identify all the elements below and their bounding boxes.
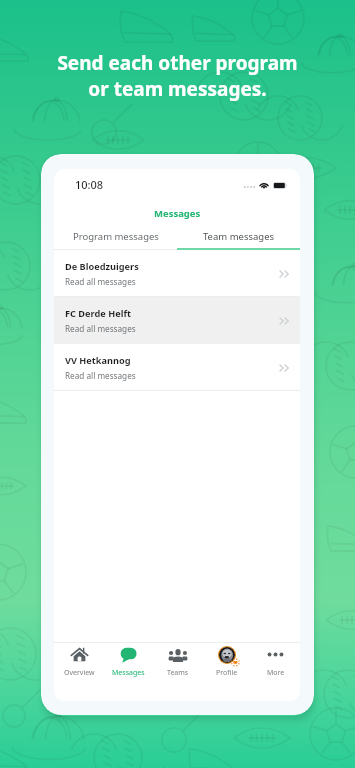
staticText: Teams — [167, 668, 189, 678]
staticText: Team messages — [203, 230, 275, 243]
staticText: Read all messages — [65, 370, 136, 381]
button[interactable]: More — [251, 643, 300, 701]
staticText: More — [267, 668, 285, 678]
staticText: De Bloedzuigers — [65, 260, 139, 273]
staticText: VV Hetkannog — [65, 354, 131, 367]
other: More — [267, 646, 284, 663]
button[interactable]: Team messages — [177, 226, 300, 247]
staticText: Program messages — [73, 230, 159, 243]
staticText: Messages — [154, 207, 201, 220]
button[interactable]: Overview — [54, 643, 104, 701]
other: Teams — [169, 648, 187, 662]
staticText: Read all messages — [65, 276, 136, 287]
staticText: Read all messages — [65, 323, 136, 334]
other: Overview — [71, 647, 88, 662]
staticText: Send each other program or team messages… — [0, 50, 355, 101]
other: Profile — [218, 646, 236, 664]
button[interactable]: Teams — [153, 643, 202, 701]
button[interactable]: Program messages — [54, 226, 177, 247]
other: Messages — [120, 647, 137, 663]
button[interactable]: VV Hetkannog — [54, 344, 300, 391]
staticText: 10:08 — [75, 177, 104, 192]
button[interactable]: FC Derde Helft — [54, 297, 300, 344]
button[interactable]: Profile — [202, 643, 251, 701]
staticText: FC Derde Helft — [65, 307, 131, 320]
staticText: Overview — [64, 668, 95, 678]
button[interactable]: Messages — [104, 643, 153, 701]
staticText: Messages — [112, 668, 145, 678]
button[interactable]: De Bloedzuigers — [54, 250, 300, 297]
staticText: Profile — [216, 668, 238, 678]
